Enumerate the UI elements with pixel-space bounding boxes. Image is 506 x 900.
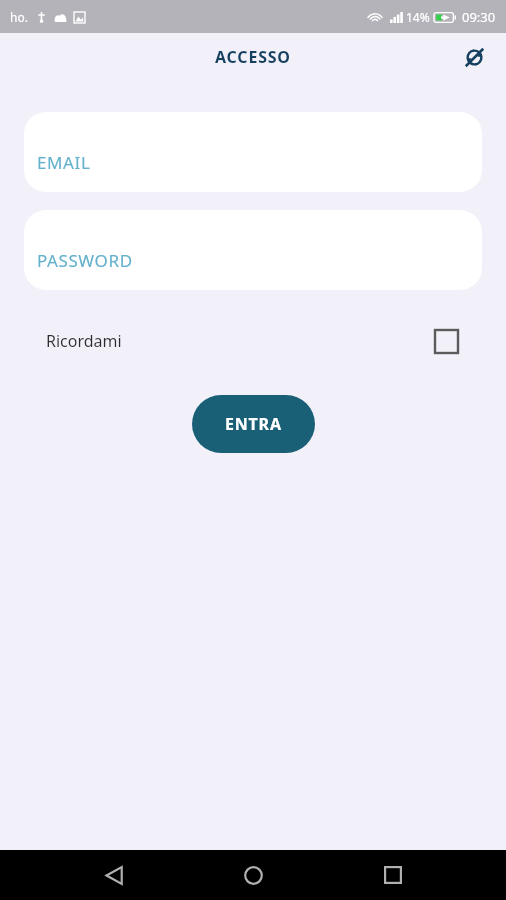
button[interactable]: EMAIL [24,112,482,192]
staticText: Ricordami [46,330,122,352]
button[interactable]: Recent apps [367,850,419,900]
staticText: 09:30 [462,8,496,26]
staticText: EMAIL [37,151,91,174]
staticText: ACCESSO [215,46,291,68]
button[interactable]: Home [227,850,279,900]
staticText: 14% [406,9,430,25]
button[interactable]: Back [88,850,140,900]
staticText: ho. [10,9,28,25]
staticText: ENTRA [225,413,282,435]
button[interactable]: PASSWORD [24,210,482,290]
staticText: PASSWORD [37,249,133,272]
button[interactable]: Sync disabled [454,37,494,77]
button[interactable]: ENTRA [192,395,315,453]
button[interactable]: Ricordami [24,318,482,364]
